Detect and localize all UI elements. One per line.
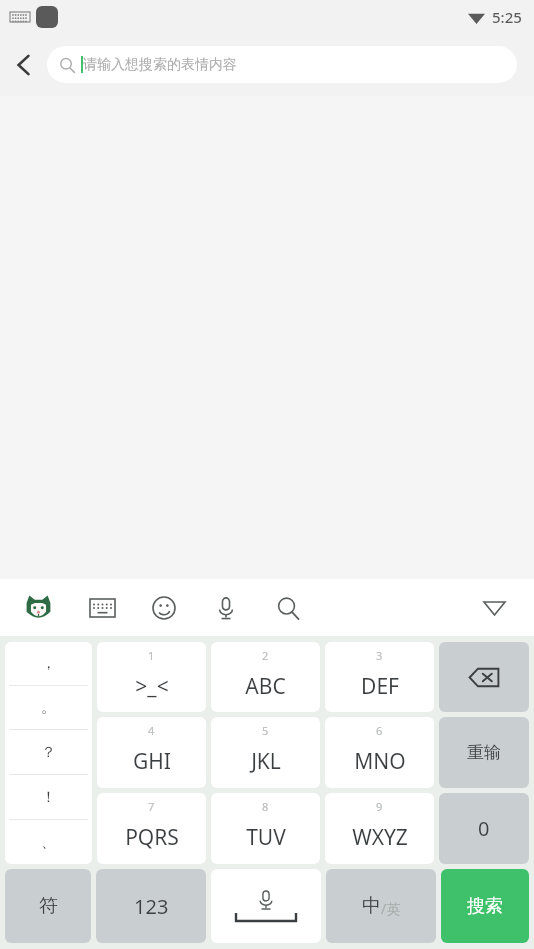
staticText: 重输 <box>467 742 501 763</box>
button[interactable]: 3 <box>325 642 434 712</box>
button[interactable]: 9 <box>325 793 434 864</box>
staticText: 8 <box>262 799 269 814</box>
button[interactable]: 7 <box>97 793 206 864</box>
staticText: 3 <box>376 648 383 663</box>
button[interactable]: 符 <box>5 869 91 943</box>
button[interactable]: Keyboard <box>82 588 122 628</box>
staticText: ！ <box>41 788 56 807</box>
staticText: ？ <box>41 743 56 762</box>
staticText: 7 <box>148 799 155 814</box>
staticText: /英 <box>381 899 401 918</box>
staticText: MNO <box>354 747 406 776</box>
button[interactable]: Back <box>0 33 47 96</box>
staticText: 6 <box>376 723 383 738</box>
staticText: PQRS <box>125 823 179 852</box>
staticText: ， <box>41 654 56 673</box>
button[interactable]: ， <box>5 642 92 685</box>
button[interactable]: 。 <box>5 686 92 729</box>
staticText: 2 <box>262 648 269 663</box>
button[interactable]: 0 <box>439 793 529 864</box>
staticText: 123 <box>134 893 169 920</box>
button[interactable]: Sogou input <box>16 586 60 630</box>
staticText: 搜索 <box>467 895 503 918</box>
staticText: 、 <box>41 833 56 852</box>
staticText: 9 <box>376 799 383 814</box>
button[interactable]: 中 <box>326 869 436 943</box>
button[interactable]: 6 <box>325 717 434 788</box>
button[interactable]: Backspace <box>439 642 529 712</box>
staticText: TUV <box>246 823 286 852</box>
button[interactable]: Voice input <box>206 588 246 628</box>
staticText: >_< <box>135 672 169 701</box>
button[interactable]: Search <box>268 588 308 628</box>
button[interactable]: Hide keyboard <box>476 590 512 626</box>
staticText: 中 <box>362 894 381 918</box>
staticText: 请输入想搜索的表情内容 <box>83 56 237 74</box>
staticText: WXYZ <box>352 823 408 852</box>
button[interactable]: 4 <box>97 717 206 788</box>
button[interactable]: 1 <box>97 642 206 712</box>
button[interactable]: 123 <box>96 869 206 943</box>
button[interactable]: Space <box>211 869 321 943</box>
button[interactable]: 重输 <box>439 717 529 788</box>
button[interactable]: ！ <box>5 775 92 819</box>
button[interactable]: 8 <box>211 793 320 864</box>
staticText: 1 <box>148 648 155 663</box>
staticText: 4 <box>148 723 155 738</box>
button[interactable]: ？ <box>5 730 92 774</box>
staticText: 5 <box>262 723 269 738</box>
staticText: 5:25 <box>492 7 522 27</box>
staticText: 。 <box>41 698 56 717</box>
button[interactable]: 请输入想搜索的表情内容 <box>47 46 517 83</box>
button[interactable]: 5 <box>211 717 320 788</box>
staticText: DEF <box>361 672 399 701</box>
staticText: 0 <box>478 815 490 842</box>
button[interactable]: 、 <box>5 820 92 864</box>
staticText: 符 <box>39 894 58 918</box>
staticText: GHI <box>133 747 171 776</box>
button[interactable]: 2 <box>211 642 320 712</box>
staticText: ABC <box>245 672 286 701</box>
button[interactable]: 搜索 <box>441 869 529 943</box>
button[interactable]: Emoji <box>144 588 184 628</box>
staticText: JKL <box>251 747 281 776</box>
